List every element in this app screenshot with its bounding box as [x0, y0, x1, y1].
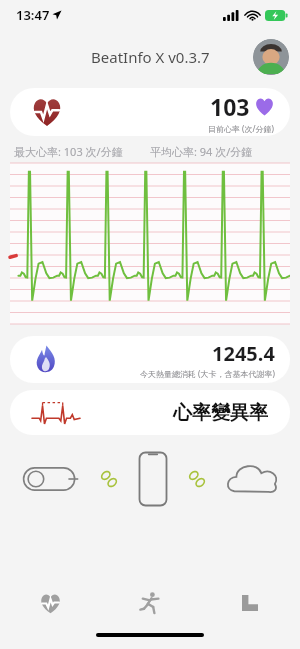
staticText: 平均心率: 94 次/分鐘 [150, 144, 286, 159]
button[interactable]: 103 [10, 88, 290, 136]
button[interactable]: Heart rate [0, 579, 100, 627]
staticText: 心率變異率 [173, 401, 268, 425]
staticText: 103 [210, 91, 250, 122]
staticText: 最大心率: 103 次/分鐘 [14, 144, 150, 159]
staticText: 13:47 [16, 6, 50, 24]
button[interactable]: Phone [138, 451, 168, 507]
staticText: 今天熱量總消耗 (大卡，含基本代謝率) [140, 368, 275, 379]
staticText: 目前心率 (次/分鐘) [208, 123, 274, 134]
staticText: 1245.4 [212, 340, 275, 367]
button[interactable]: Sensor device [22, 464, 80, 494]
button[interactable]: 1245.4 [10, 336, 290, 383]
button[interactable]: Cloud [226, 461, 278, 497]
button[interactable]: More [200, 579, 300, 627]
button[interactable]: Activity [100, 579, 200, 627]
button[interactable]: Profile [253, 39, 289, 75]
staticText: BeatInfo X v0.3.7 [91, 47, 210, 67]
button[interactable]: 心率變異率 [10, 390, 290, 435]
